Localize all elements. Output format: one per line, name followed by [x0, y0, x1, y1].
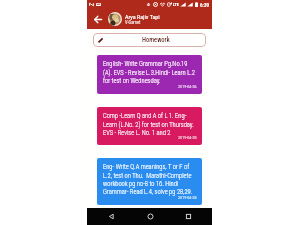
staticText: Arya Rajiv Tapi: [125, 13, 160, 20]
button[interactable]: Eng- Write Q.A meanings, T or F of L.2, …: [97, 158, 202, 205]
staticText: 2019-04-25: [178, 135, 197, 140]
staticText: Comp -Learn Q and A of L 1. Eng- Learn (…: [103, 112, 194, 136]
staticText: 2019-04-26: [178, 84, 197, 89]
button[interactable]: Back: [96, 208, 126, 225]
staticText: LTE: [173, 2, 179, 7]
button[interactable]: English- Write Grammar Pg.No.19 (A). EVS…: [97, 55, 202, 94]
staticText: V-Garnet: [125, 20, 141, 25]
button[interactable]: Back: [87, 9, 108, 29]
staticText: Homework: [142, 36, 170, 44]
button[interactable]: Home: [135, 208, 165, 225]
button[interactable]: Profile photo: [108, 12, 122, 26]
button[interactable]: Homework: [93, 33, 206, 47]
button[interactable]: Comp -Learn Q and A of L 1. Eng- Learn (…: [97, 107, 202, 145]
staticText: Eng- Write Q.A meanings, T or F of L.2, …: [103, 163, 193, 195]
staticText: English- Write Grammar Pg.No.19 (A). EVS…: [103, 60, 195, 84]
staticText: 2019-04-24: [178, 195, 197, 200]
staticText: 6:39: [200, 2, 210, 8]
button[interactable]: Recent apps: [173, 208, 203, 225]
